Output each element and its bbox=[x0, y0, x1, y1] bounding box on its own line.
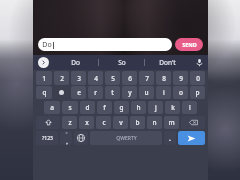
staticText: o bbox=[179, 88, 183, 97]
staticText: e bbox=[77, 88, 81, 97]
button[interactable]: 0 bbox=[190, 71, 205, 85]
button[interactable]: c bbox=[96, 116, 111, 129]
staticText: h bbox=[136, 103, 141, 112]
staticText: l bbox=[189, 103, 191, 112]
staticText: z bbox=[68, 118, 72, 127]
button[interactable]: y bbox=[122, 86, 137, 99]
button[interactable]: ?123 bbox=[36, 131, 58, 145]
staticText: 7 bbox=[145, 74, 149, 83]
button[interactable]: n bbox=[147, 116, 162, 129]
button[interactable]: g bbox=[114, 101, 129, 114]
staticText: Do bbox=[71, 58, 80, 67]
button[interactable]: q bbox=[36, 86, 52, 99]
staticText: 5 bbox=[111, 74, 115, 83]
button[interactable]: z bbox=[62, 116, 77, 129]
button[interactable]: t bbox=[105, 86, 120, 99]
staticText: 0 bbox=[196, 74, 200, 83]
staticText: QWERTY bbox=[116, 135, 137, 142]
staticText: b bbox=[135, 118, 140, 127]
button[interactable]: b bbox=[130, 116, 145, 129]
button[interactable]: Do bbox=[38, 38, 172, 51]
button[interactable]: p bbox=[190, 86, 205, 99]
button[interactable]: a bbox=[44, 101, 60, 114]
staticText: 9 bbox=[179, 74, 183, 83]
staticText: j bbox=[155, 103, 157, 112]
button[interactable]: u bbox=[139, 86, 154, 99]
button[interactable]: 9 bbox=[173, 71, 188, 85]
staticText: Do bbox=[42, 40, 52, 50]
staticText: t bbox=[111, 88, 114, 97]
button[interactable]: e bbox=[71, 86, 86, 99]
button[interactable]: Backspace bbox=[181, 116, 205, 129]
staticText: g bbox=[119, 103, 124, 112]
button[interactable]: Voice input bbox=[190, 55, 208, 70]
staticText: a bbox=[50, 103, 54, 112]
staticText: SEND bbox=[182, 41, 197, 48]
staticText: p bbox=[195, 88, 200, 97]
staticText: , bbox=[66, 138, 68, 145]
staticText: m bbox=[168, 118, 175, 127]
staticText: 2 bbox=[60, 74, 64, 83]
button[interactable]: d bbox=[80, 101, 95, 114]
button[interactable]: 8 bbox=[156, 71, 171, 85]
staticText: 8 bbox=[162, 74, 166, 83]
staticText: . bbox=[169, 134, 171, 143]
staticText: r bbox=[94, 88, 97, 97]
button[interactable]: Don't bbox=[145, 55, 190, 70]
button[interactable]: 6 bbox=[122, 71, 137, 85]
staticText: n bbox=[152, 118, 157, 127]
button[interactable]: 3 bbox=[71, 71, 86, 85]
button[interactable]: Do bbox=[53, 55, 98, 70]
staticText: ° bbox=[65, 131, 68, 138]
button[interactable]: 4 bbox=[88, 71, 103, 85]
button[interactable]: SEND bbox=[175, 38, 203, 51]
staticText: u bbox=[144, 88, 149, 97]
button[interactable]: l bbox=[182, 101, 197, 114]
button[interactable]: s bbox=[62, 101, 78, 114]
staticText: 6 bbox=[128, 74, 132, 83]
staticText: c bbox=[102, 118, 106, 127]
button[interactable]: m bbox=[164, 116, 179, 129]
staticText: d bbox=[85, 103, 90, 112]
staticText: 3 bbox=[77, 74, 81, 83]
button[interactable]: Comma bbox=[60, 131, 72, 145]
staticText: ?123 bbox=[42, 135, 53, 142]
staticText: v bbox=[119, 118, 123, 127]
button[interactable]: Period bbox=[164, 131, 176, 145]
staticText: q bbox=[42, 88, 47, 97]
staticText: 4 bbox=[94, 74, 98, 83]
button[interactable]: QWERTY bbox=[90, 131, 162, 145]
button[interactable]: 7 bbox=[139, 71, 154, 85]
staticText: So bbox=[118, 58, 126, 67]
button[interactable] bbox=[54, 86, 69, 99]
button[interactable]: Expand suggestions bbox=[38, 57, 49, 68]
button[interactable]: Shift bbox=[36, 116, 60, 129]
button[interactable]: Send bbox=[178, 131, 205, 145]
button[interactable]: 5 bbox=[105, 71, 120, 85]
button[interactable]: 1 bbox=[36, 71, 52, 85]
button[interactable]: v bbox=[113, 116, 128, 129]
button[interactable]: x bbox=[79, 116, 94, 129]
staticText: k bbox=[171, 103, 175, 112]
button[interactable]: o bbox=[173, 86, 188, 99]
staticText: i bbox=[163, 88, 165, 97]
button[interactable]: j bbox=[148, 101, 163, 114]
button[interactable]: f bbox=[97, 101, 112, 114]
button[interactable]: i bbox=[156, 86, 171, 99]
staticText: s bbox=[68, 103, 72, 112]
button[interactable]: So bbox=[99, 55, 144, 70]
staticText: x bbox=[85, 118, 89, 127]
staticText: Don't bbox=[159, 58, 176, 67]
button[interactable]: Switch language bbox=[74, 131, 88, 145]
button[interactable]: 2 bbox=[54, 71, 69, 85]
button[interactable]: k bbox=[165, 101, 180, 114]
button[interactable]: r bbox=[88, 86, 103, 99]
staticText: 1 bbox=[42, 74, 46, 83]
button[interactable]: h bbox=[131, 101, 146, 114]
staticText: f bbox=[103, 103, 106, 112]
staticText: y bbox=[128, 88, 132, 97]
